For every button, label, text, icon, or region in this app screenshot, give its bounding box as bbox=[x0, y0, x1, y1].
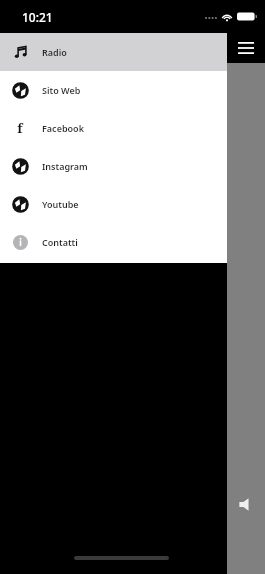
staticText: Sito Web bbox=[42, 84, 81, 96]
staticText: Instagram bbox=[42, 160, 88, 172]
button[interactable]: Contatti bbox=[0, 223, 227, 261]
staticText: 10:21 bbox=[22, 9, 53, 25]
button[interactable]: Instagram bbox=[0, 147, 227, 185]
button[interactable]: Open navigation menu bbox=[227, 33, 265, 63]
button[interactable]: Radio bbox=[0, 33, 227, 71]
button[interactable]: Youtube bbox=[0, 185, 227, 223]
staticText: Youtube bbox=[42, 198, 79, 210]
staticText: Contatti bbox=[42, 236, 78, 248]
button[interactable]: Volume bbox=[234, 492, 258, 516]
button[interactable]: f bbox=[0, 109, 227, 147]
button[interactable]: Sito Web bbox=[0, 71, 227, 109]
staticText: f bbox=[17, 119, 23, 137]
staticText: Radio bbox=[42, 46, 67, 58]
staticText: Facebook bbox=[42, 122, 84, 134]
